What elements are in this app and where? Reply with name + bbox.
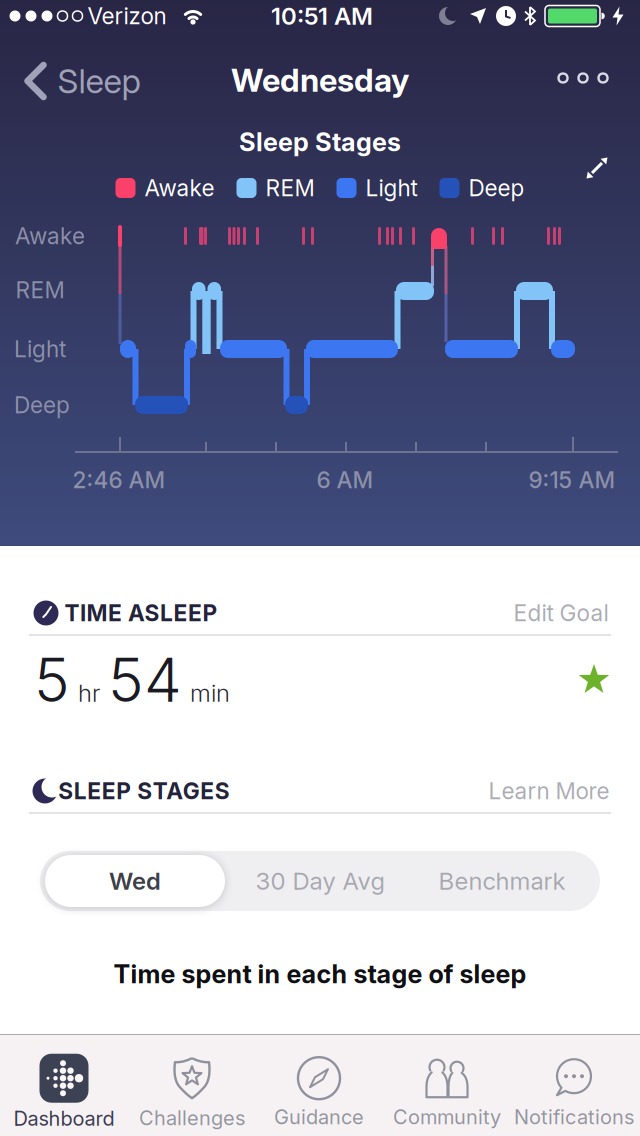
button[interactable]: Benchmark bbox=[438, 867, 565, 895]
staticText: REM bbox=[15, 277, 64, 303]
staticText: Light bbox=[365, 175, 417, 201]
button[interactable]: 30 Day Avg bbox=[255, 867, 384, 895]
staticText: Light bbox=[14, 336, 66, 362]
staticText: 6 AM bbox=[316, 467, 373, 493]
staticText: min bbox=[190, 679, 230, 707]
staticText: 5 bbox=[34, 645, 70, 715]
staticText: Community bbox=[393, 1105, 501, 1129]
staticText: Edit Goal bbox=[513, 600, 608, 626]
button[interactable]: Notifications bbox=[514, 1057, 634, 1129]
staticText: hr bbox=[78, 679, 100, 707]
staticText: 30 Day Avg bbox=[255, 867, 384, 895]
button[interactable]: Guidance bbox=[274, 1057, 364, 1129]
staticText: Time spent in each stage of sleep bbox=[113, 959, 526, 989]
staticText: Sleep Stages bbox=[239, 127, 401, 157]
staticText: 54 bbox=[108, 645, 182, 715]
button[interactable]: Challenges bbox=[139, 1056, 245, 1130]
staticText: Deep bbox=[14, 392, 70, 418]
staticText: Wed bbox=[109, 867, 161, 895]
staticText: Challenges bbox=[139, 1106, 245, 1130]
staticText: Awake bbox=[15, 223, 85, 249]
staticText: Wednesday bbox=[231, 61, 409, 99]
staticText: Guidance bbox=[274, 1105, 364, 1129]
staticText: REM bbox=[265, 175, 314, 201]
staticText: 9:15 AM bbox=[528, 467, 615, 493]
staticText: TIME ASLEEP bbox=[64, 600, 217, 626]
button[interactable]: Expand bbox=[583, 154, 611, 182]
staticText: 2:46 AM bbox=[72, 467, 165, 493]
button[interactable]: Learn More bbox=[488, 778, 609, 804]
staticText: Verizon bbox=[87, 3, 166, 29]
button[interactable]: More bbox=[558, 73, 607, 82]
staticText: Learn More bbox=[488, 778, 609, 804]
staticText: SLEEP STAGES bbox=[58, 778, 230, 804]
button[interactable]: Dashboard bbox=[13, 1054, 114, 1130]
button[interactable]: Edit Goal bbox=[513, 600, 608, 626]
staticText: Dashboard bbox=[13, 1107, 114, 1130]
staticText: Benchmark bbox=[438, 867, 565, 895]
button[interactable]: Wed bbox=[45, 855, 225, 907]
staticText: Notifications bbox=[514, 1105, 634, 1129]
button[interactable]: Community bbox=[393, 1057, 501, 1129]
staticText: Sleep bbox=[57, 61, 140, 101]
staticText: Deep bbox=[468, 175, 524, 201]
staticText: Awake bbox=[144, 175, 214, 201]
button[interactable]: Sleep bbox=[23, 61, 140, 101]
staticText: 10:51 AM bbox=[271, 2, 373, 30]
